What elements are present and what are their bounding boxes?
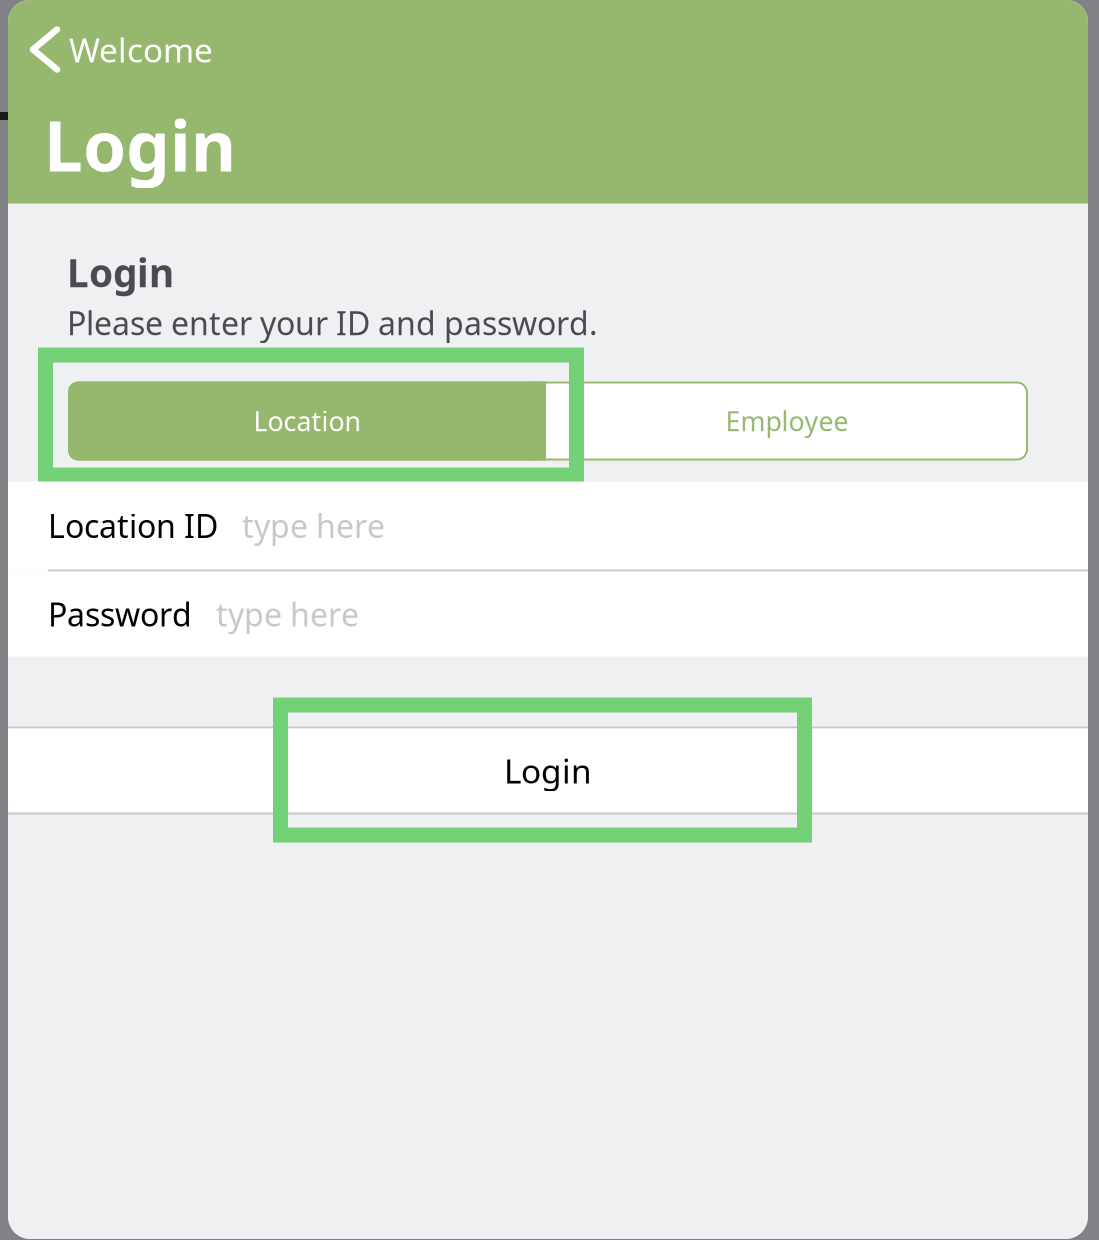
- staticText: Employee: [725, 403, 848, 439]
- button[interactable]: Password: [8, 571, 1088, 656]
- staticText: type here: [242, 504, 385, 547]
- button[interactable]: Location ID: [8, 481, 1088, 569]
- staticText: Please enter your ID and password.: [67, 301, 598, 344]
- staticText: Welcome: [69, 27, 213, 72]
- button[interactable]: Login: [8, 728, 1088, 812]
- staticText: Login: [504, 748, 592, 793]
- staticText: Location ID: [48, 504, 218, 547]
- staticText: Password: [48, 593, 192, 635]
- button[interactable]: Welcome: [8, 18, 237, 80]
- button[interactable]: Employee: [546, 381, 1028, 460]
- staticText: Login: [67, 246, 174, 298]
- staticText: type here: [216, 593, 359, 635]
- staticText: Login: [44, 98, 236, 191]
- button[interactable]: Location: [68, 381, 546, 460]
- staticText: Location: [253, 403, 360, 439]
